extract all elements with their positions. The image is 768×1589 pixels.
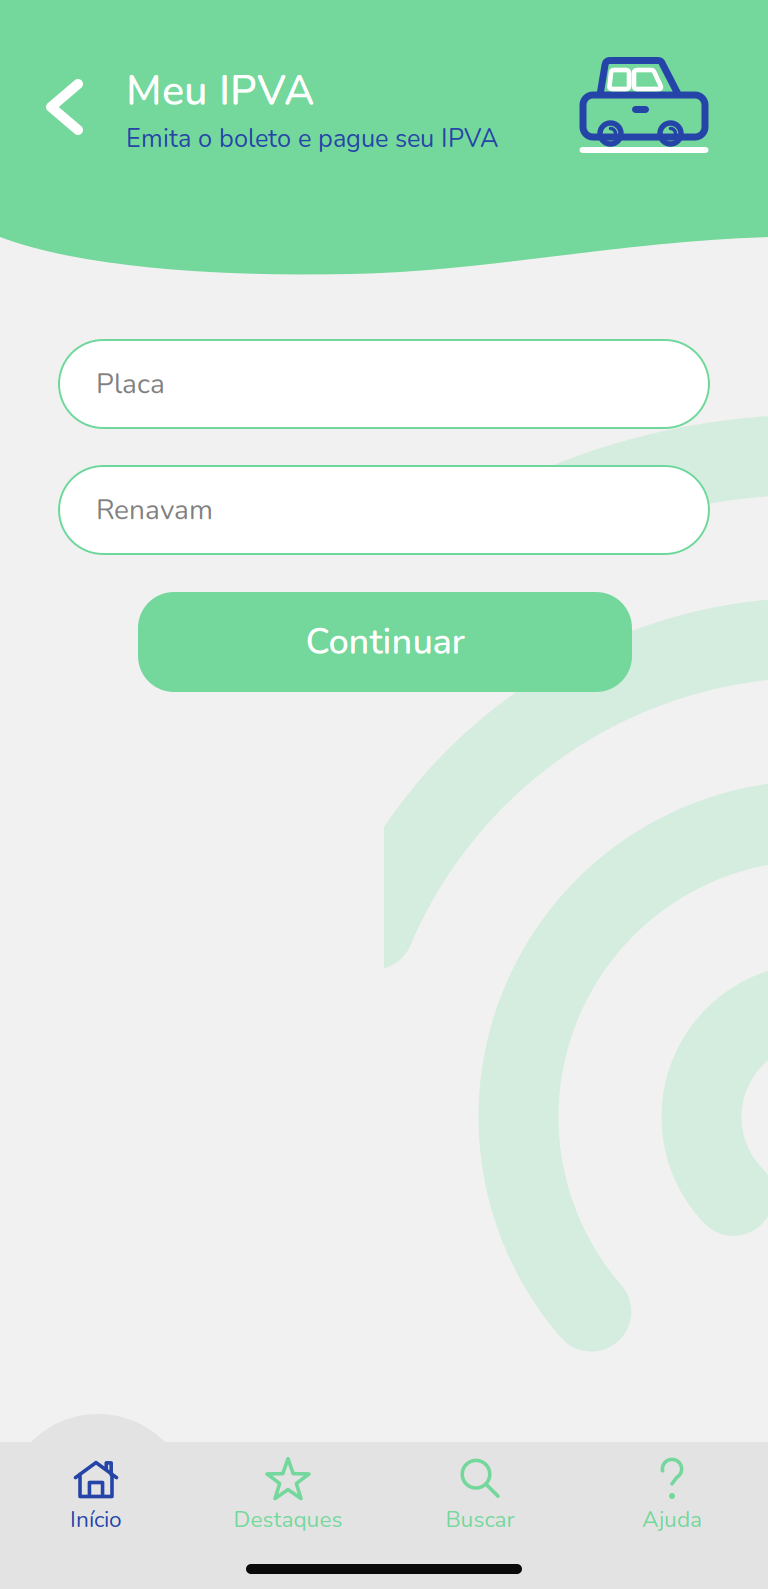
staticText: Início <box>70 1504 122 1535</box>
staticText: Meu IPVA <box>126 63 314 119</box>
button[interactable]: Início <box>0 1456 192 1535</box>
button[interactable]: Ajuda <box>576 1456 768 1535</box>
staticText: Renavam <box>96 491 213 529</box>
staticText: Continuar <box>305 617 464 666</box>
staticText: Placa <box>96 365 165 403</box>
button[interactable]: Buscar <box>384 1456 576 1535</box>
button[interactable]: Back <box>25 58 104 156</box>
staticText: Emita o boleto e pague seu IPVA <box>126 121 498 156</box>
staticText: Ajuda <box>642 1504 702 1535</box>
button[interactable]: Destaques <box>192 1456 384 1535</box>
button[interactable]: Continuar <box>138 592 632 692</box>
staticText: Destaques <box>233 1504 342 1535</box>
staticText: Buscar <box>445 1504 514 1535</box>
